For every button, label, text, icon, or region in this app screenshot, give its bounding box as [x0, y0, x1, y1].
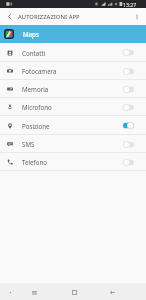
button[interactable]: Memoria	[0, 80, 146, 98]
button[interactable]: Hide navigation bar	[3, 285, 17, 299]
button[interactable]: More options	[128, 8, 146, 25]
staticText: SMS	[22, 140, 35, 148]
button[interactable]: Back	[105, 285, 119, 299]
staticText: 13:27	[123, 1, 137, 8]
button[interactable]: Maps	[0, 25, 146, 43]
staticText: Contatti	[22, 49, 46, 57]
button[interactable]: Contatti	[0, 43, 146, 62]
staticText: Maps	[23, 30, 39, 38]
button[interactable]: Back	[0, 8, 18, 25]
button[interactable]: Telefono	[0, 153, 146, 171]
staticText: Microfono	[22, 103, 52, 111]
button[interactable]: Recent apps	[27, 285, 41, 299]
staticText: Fotocamera	[22, 67, 57, 75]
staticText: AUTORIZZAZIONI APP	[18, 13, 80, 21]
button[interactable]: Fotocamera	[0, 62, 146, 80]
staticText: Posizione	[22, 122, 50, 130]
button[interactable]: SMS	[0, 135, 146, 153]
button[interactable]: Home	[67, 285, 81, 299]
staticText: Memoria	[22, 85, 49, 93]
button[interactable]: Microfono	[0, 98, 146, 116]
button[interactable]: Posizione	[0, 116, 146, 135]
staticText: Telefono	[22, 158, 48, 166]
